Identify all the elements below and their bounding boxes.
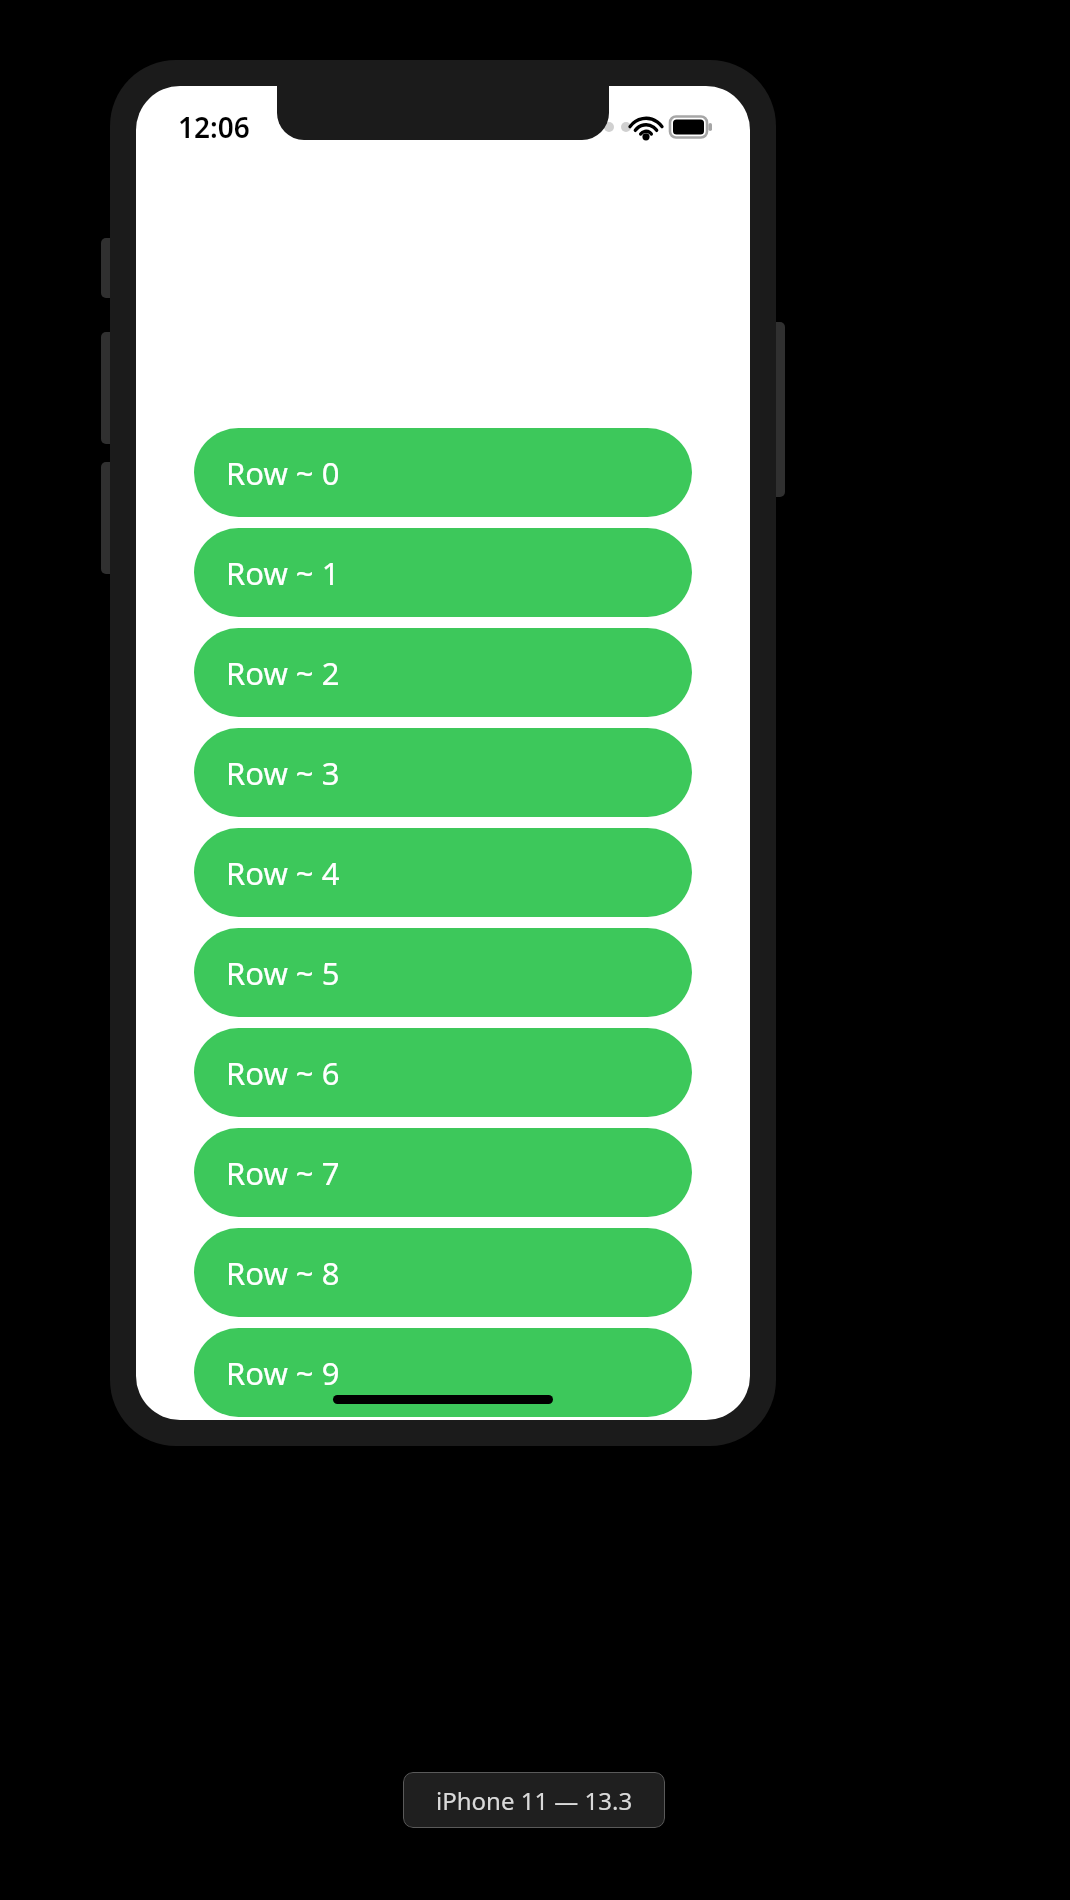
staticText: Row ~ 8 (226, 1252, 340, 1294)
button[interactable]: Row ~ 6 (194, 1028, 692, 1117)
staticText: Row ~ 9 (226, 1352, 340, 1394)
staticText: Row ~ 1 (226, 552, 340, 594)
staticText: iPhone 11 — 13.3 (436, 1784, 633, 1817)
staticText: Row ~ 0 (226, 452, 340, 494)
button[interactable]: Row ~ 8 (194, 1228, 692, 1317)
button[interactable]: iPhone 11 — 13.3 (403, 1772, 665, 1828)
staticText: Row ~ 2 (226, 652, 340, 694)
button[interactable]: Row ~ 7 (194, 1128, 692, 1217)
button[interactable]: Row ~ 5 (194, 928, 692, 1017)
button[interactable]: Row ~ 3 (194, 728, 692, 817)
staticText: Row ~ 6 (226, 1052, 340, 1094)
button[interactable]: Row ~ 9 (194, 1328, 692, 1417)
button[interactable]: Row ~ 0 (194, 428, 692, 517)
staticText: 12:06 (178, 108, 250, 146)
button[interactable]: Row ~ 4 (194, 828, 692, 917)
staticText: Row ~ 4 (226, 852, 340, 894)
staticText: Row ~ 3 (226, 752, 340, 794)
staticText: Row ~ 5 (226, 952, 340, 994)
button[interactable]: Row ~ 2 (194, 628, 692, 717)
staticText: Row ~ 7 (226, 1152, 340, 1194)
button[interactable]: Row ~ 1 (194, 528, 692, 617)
